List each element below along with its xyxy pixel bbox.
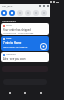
button[interactable]: Messages [1,52,49,62]
button[interactable]: Recents [35,87,47,99]
button[interactable]: Gmail [1,23,49,35]
staticText: Messages [6,53,16,56]
staticText: Maps [6,37,12,40]
button[interactable]: Quick setting tile [9,10,15,16]
button[interactable]: Back [4,87,16,99]
button[interactable]: Navigate [40,43,47,50]
staticText: Light traffic on Main St [3,46,28,49]
button[interactable]: Quick setting tile [17,10,23,16]
staticText: Arriving Thu · Track package [3,32,34,35]
staticText: Notifications [2,19,17,22]
button[interactable]: Quick setting tile [25,10,31,16]
staticText: Tue, Jan 9 [2,5,13,8]
staticText: 7 min to Home [3,41,22,45]
button[interactable]: Home [19,87,31,99]
staticText: Your order has shipped [3,28,31,31]
staticText: Gmail [6,24,12,27]
button[interactable]: Quick setting tile [33,10,39,16]
staticText: Alex · see you soon [3,57,26,60]
button[interactable]: Maps [1,36,49,51]
button[interactable]: Quick setting tile [41,10,47,16]
button[interactable]: Quick setting tile [1,10,7,16]
